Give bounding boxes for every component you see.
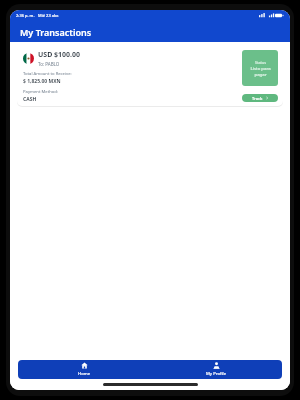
button[interactable]: USD $100.00 — [17, 45, 283, 106]
staticText: $ 1,825.00 MXN — [23, 78, 61, 85]
staticText: Home — [78, 371, 91, 377]
staticText: Mié 23 abr. — [38, 13, 59, 18]
staticText: USD $100.00 — [38, 50, 81, 60]
staticText: Payment Method: — [23, 89, 58, 95]
staticText: My Transactions — [20, 26, 92, 38]
staticText: Listo para pagar — [250, 66, 271, 77]
staticText: CASH — [23, 96, 37, 102]
button[interactable]: Status — [242, 50, 278, 86]
staticText: 2:36 p. m. — [16, 13, 35, 18]
staticText: Track — [252, 96, 263, 101]
staticText: Total Amount to Receive: — [23, 71, 72, 77]
button[interactable]: Home — [18, 360, 150, 379]
button[interactable]: My Profile — [150, 360, 282, 379]
button[interactable]: Track — [242, 94, 278, 102]
staticText: Status — [255, 60, 266, 65]
staticText: To: PABLO — [38, 61, 60, 67]
staticText: My Profile — [206, 371, 227, 377]
